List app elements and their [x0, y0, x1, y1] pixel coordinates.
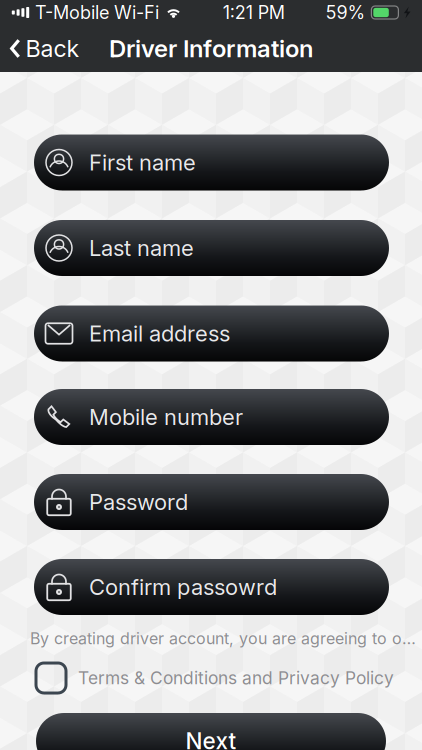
staticText: Terms & Conditions and Privacy Policy: [78, 667, 394, 688]
staticText: Driver Information: [109, 34, 313, 63]
staticText: Last name: [89, 235, 194, 261]
button[interactable]: Terms & Conditions and Privacy Policy: [36, 662, 422, 694]
button[interactable]: Back: [0, 24, 91, 73]
staticText: 1:21 PM: [223, 2, 285, 23]
button[interactable]: Confirm passowrd: [34, 559, 389, 615]
staticText: T-Mobile Wi-Fi: [35, 2, 159, 23]
button[interactable]: Password: [34, 474, 389, 530]
staticText: Back: [25, 34, 79, 63]
staticText: Password: [89, 489, 188, 515]
staticText: Next: [185, 727, 236, 750]
button[interactable]: Last name: [34, 220, 389, 276]
button[interactable]: Next: [36, 713, 386, 750]
staticText: By creating driver account, you are agre…: [30, 629, 416, 648]
button[interactable]: First name: [34, 134, 389, 190]
button[interactable]: Email address: [34, 305, 389, 361]
staticText: 59%: [325, 2, 365, 23]
button[interactable]: Mobile number: [34, 389, 389, 445]
staticText: First name: [89, 149, 196, 176]
staticText: Email address: [89, 320, 230, 347]
staticText: Confirm passowrd: [89, 574, 277, 600]
staticText: Mobile number: [89, 404, 243, 430]
